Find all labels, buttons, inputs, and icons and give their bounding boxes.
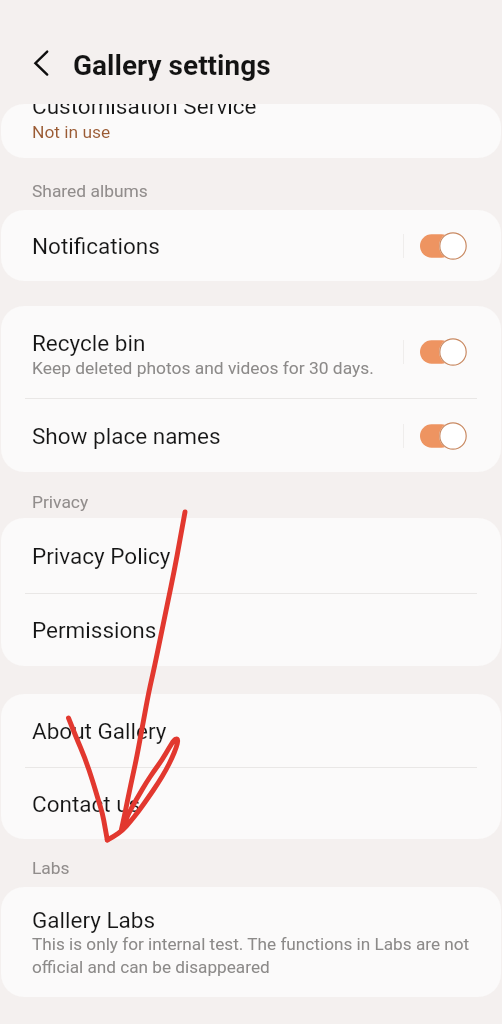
staticText: This is only for internal test. The func… [32,934,475,977]
button[interactable]: Show place names [1,399,501,472]
staticText: Privacy [32,492,89,512]
staticText: Show place names [32,423,221,449]
button[interactable]: Contact us [1,768,501,839]
staticText: Customisation Service [32,104,257,119]
staticText: Privacy Policy [32,543,171,569]
staticText: Contact us [32,791,141,817]
button[interactable]: Notifications toggle [420,231,467,261]
button[interactable]: Recycle bin [1,306,501,398]
staticText: Recycle bin [32,330,146,356]
button[interactable]: Privacy Policy [1,518,501,593]
staticText: Shared albums [32,181,148,201]
staticText: Notifications [32,233,160,259]
staticText: Gallery settings [73,49,271,82]
button[interactable]: Permissions [1,594,501,666]
staticText: Keep deleted photos and videos for 30 da… [32,358,374,378]
button[interactable]: Show place names toggle [420,421,467,451]
staticText: Labs [32,858,70,878]
staticText: Not in use [32,122,111,142]
button[interactable]: Back [23,39,71,87]
staticText: About Gallery [32,718,167,744]
button[interactable]: About Gallery [1,694,501,767]
staticText: Gallery Labs [32,907,156,933]
staticText: Permissions [32,617,157,643]
button[interactable]: Recycle bin toggle [420,337,467,367]
button[interactable]: Notifications [1,210,501,281]
